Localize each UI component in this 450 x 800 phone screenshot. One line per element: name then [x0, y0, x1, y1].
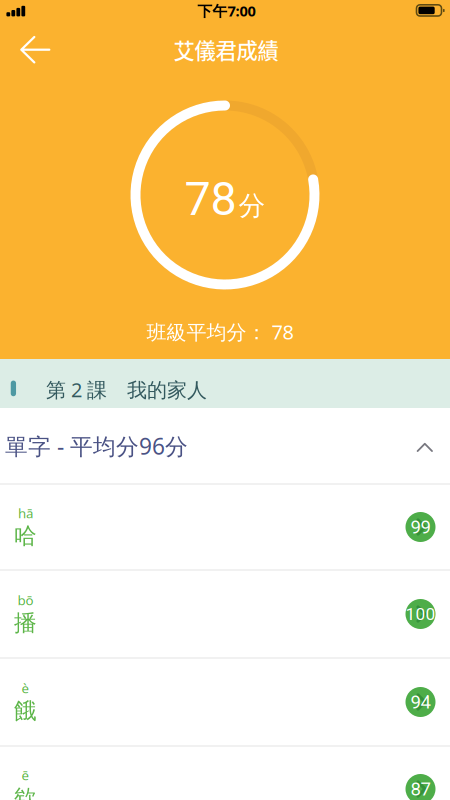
button[interactable]: 單字 - 平均分96分 — [0, 408, 450, 484]
staticText: 78 — [184, 172, 236, 226]
staticText: 99 — [410, 516, 430, 538]
button[interactable]: bō — [0, 570, 450, 658]
staticText: è — [21, 679, 29, 697]
staticText: hā — [18, 504, 33, 522]
button[interactable]: hā — [0, 483, 450, 571]
staticText: ē — [21, 766, 29, 784]
staticText: 單字 - 平均分96分 — [5, 431, 188, 461]
staticText: 100 — [405, 604, 435, 624]
staticText: 94 — [410, 691, 430, 713]
staticText: 下午7:00 — [197, 1, 255, 20]
staticText: 艾儀君成績 — [173, 34, 278, 65]
button[interactable] — [2, 29, 64, 71]
button[interactable]: è — [0, 658, 450, 746]
staticText: 欸 — [14, 784, 37, 800]
staticText: 餓 — [14, 697, 37, 725]
staticText: 播 — [14, 609, 37, 637]
staticText: 哈 — [14, 522, 37, 550]
staticText: 87 — [410, 778, 430, 800]
staticText: 分 — [238, 190, 265, 222]
staticText: bō — [17, 591, 33, 609]
staticText: 班級平均分： 78 — [146, 318, 293, 345]
button[interactable]: ē — [0, 745, 450, 800]
staticText: 第 2 課 我的家人 — [46, 376, 207, 403]
